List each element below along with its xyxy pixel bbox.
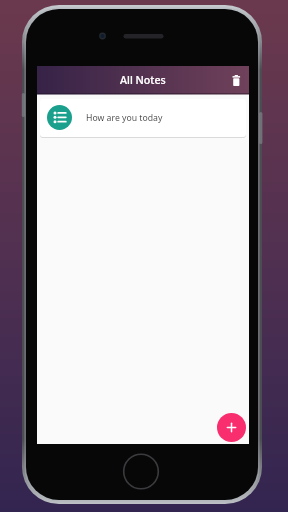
button[interactable] [217,413,246,442]
button[interactable]: How are you today [40,99,246,137]
staticText: All Notes [120,73,166,88]
staticText: How are you today [86,112,163,124]
button[interactable] [231,75,243,87]
